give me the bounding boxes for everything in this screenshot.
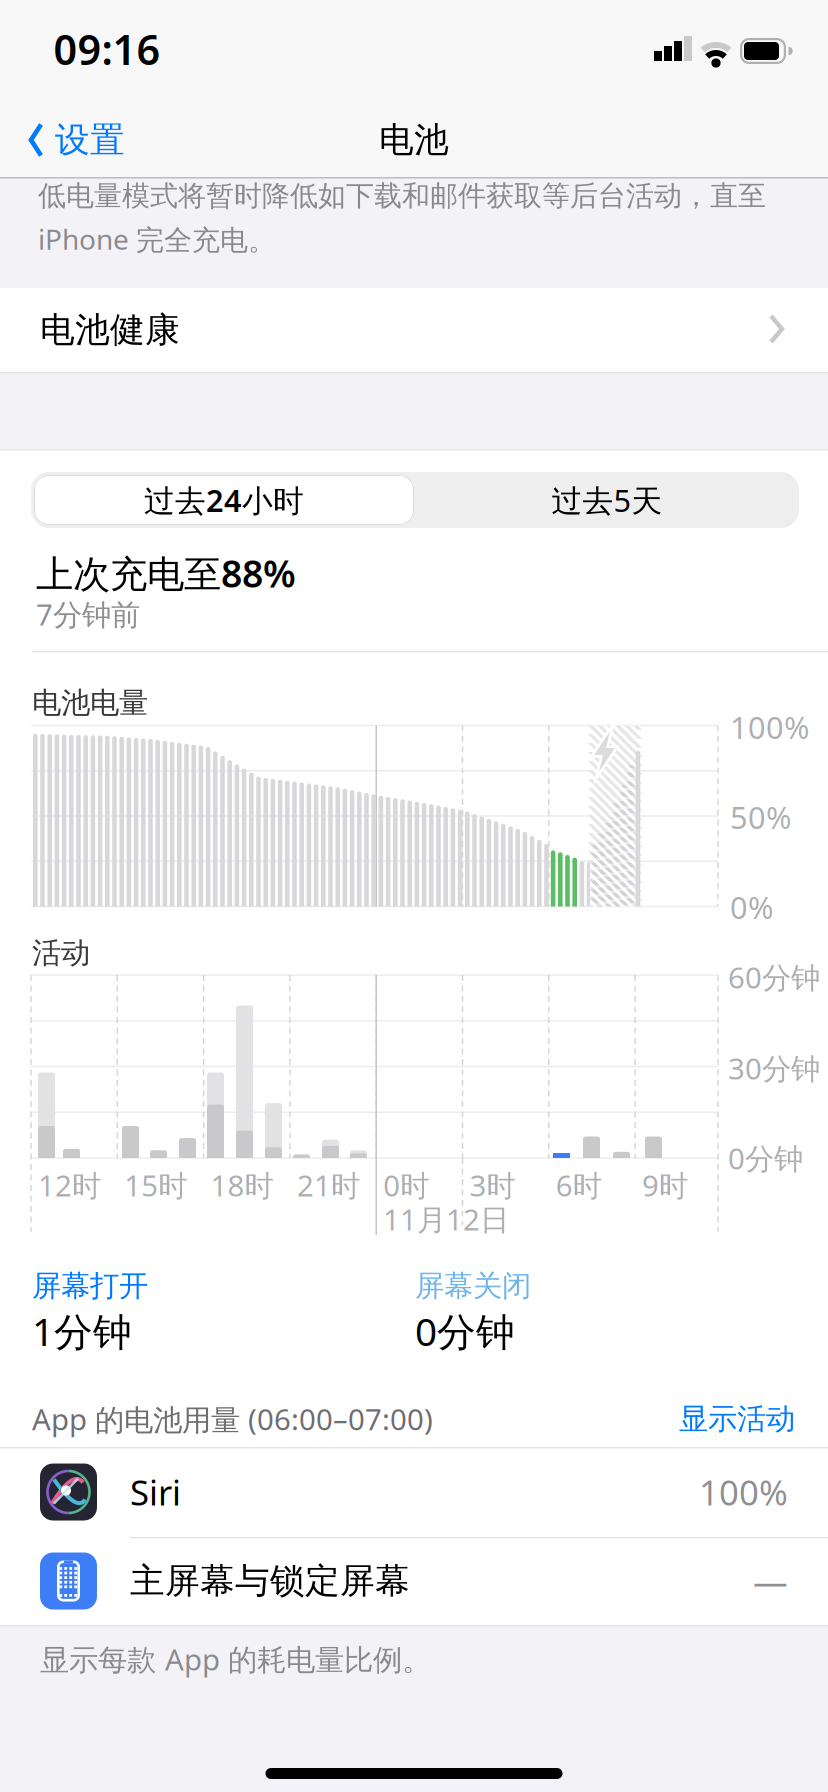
staticText: 1分钟 — [32, 1305, 132, 1357]
staticText: 显示每款 App 的耗电量比例。 — [40, 1639, 431, 1678]
staticText: App 的电池用量 (06:00–07:00) — [32, 1399, 433, 1438]
button[interactable]: 过去24小时 — [34, 475, 414, 525]
staticText: 低电量模式将暂时降低如下载和邮件获取等后台活动，直至 — [38, 179, 766, 213]
staticText: 0分钟 — [415, 1305, 515, 1357]
staticText: 主屏幕与锁定屏幕 — [130, 1560, 410, 1602]
staticText: 0时 — [383, 1165, 429, 1204]
staticText: 18时 — [211, 1165, 274, 1204]
staticText: 60分钟 — [728, 957, 820, 996]
staticText: 电池 — [379, 119, 449, 161]
button[interactable]: 电池健康 — [0, 287, 828, 372]
staticText: 过去5天 — [551, 480, 662, 520]
staticText: 30分钟 — [728, 1048, 820, 1087]
staticText: 0% — [730, 887, 773, 927]
staticText: 9时 — [642, 1165, 688, 1204]
staticText: Siri — [130, 1469, 181, 1515]
staticText: 3时 — [469, 1165, 515, 1204]
staticText: 6时 — [556, 1165, 602, 1204]
staticText: 设置 — [55, 119, 125, 161]
staticText: — — [753, 1558, 788, 1604]
button[interactable]: 主屏幕与锁定屏幕 — [0, 1537, 828, 1625]
staticText: 15时 — [124, 1165, 187, 1204]
staticText: 12时 — [38, 1165, 101, 1204]
staticText: 7分钟前 — [36, 594, 140, 633]
button[interactable]: Siri — [0, 1448, 828, 1536]
staticText: 0分钟 — [728, 1138, 803, 1177]
staticText: 电池健康 — [40, 309, 180, 351]
staticText: 上次充电至88% — [36, 548, 296, 598]
staticText: 显示活动 — [679, 1401, 795, 1437]
staticText: 50% — [730, 797, 791, 837]
staticText: 09:16 — [53, 22, 160, 76]
button[interactable]: 过去5天 — [417, 475, 797, 525]
staticText: 100% — [699, 1469, 788, 1515]
button[interactable]: 显示活动 — [679, 1401, 795, 1437]
staticText: iPhone 完全充电。 — [38, 220, 276, 258]
staticText: 屏幕关闭 — [415, 1268, 531, 1304]
staticText: 11月12日 — [383, 1199, 509, 1238]
staticText: 100% — [730, 707, 809, 747]
staticText: 活动 — [32, 935, 90, 971]
staticText: 过去24小时 — [144, 480, 304, 520]
staticText: 屏幕打开 — [32, 1268, 148, 1304]
button[interactable]: 设置 — [29, 119, 125, 161]
staticText: 21时 — [297, 1165, 360, 1204]
staticText: 电池电量 — [32, 685, 148, 721]
